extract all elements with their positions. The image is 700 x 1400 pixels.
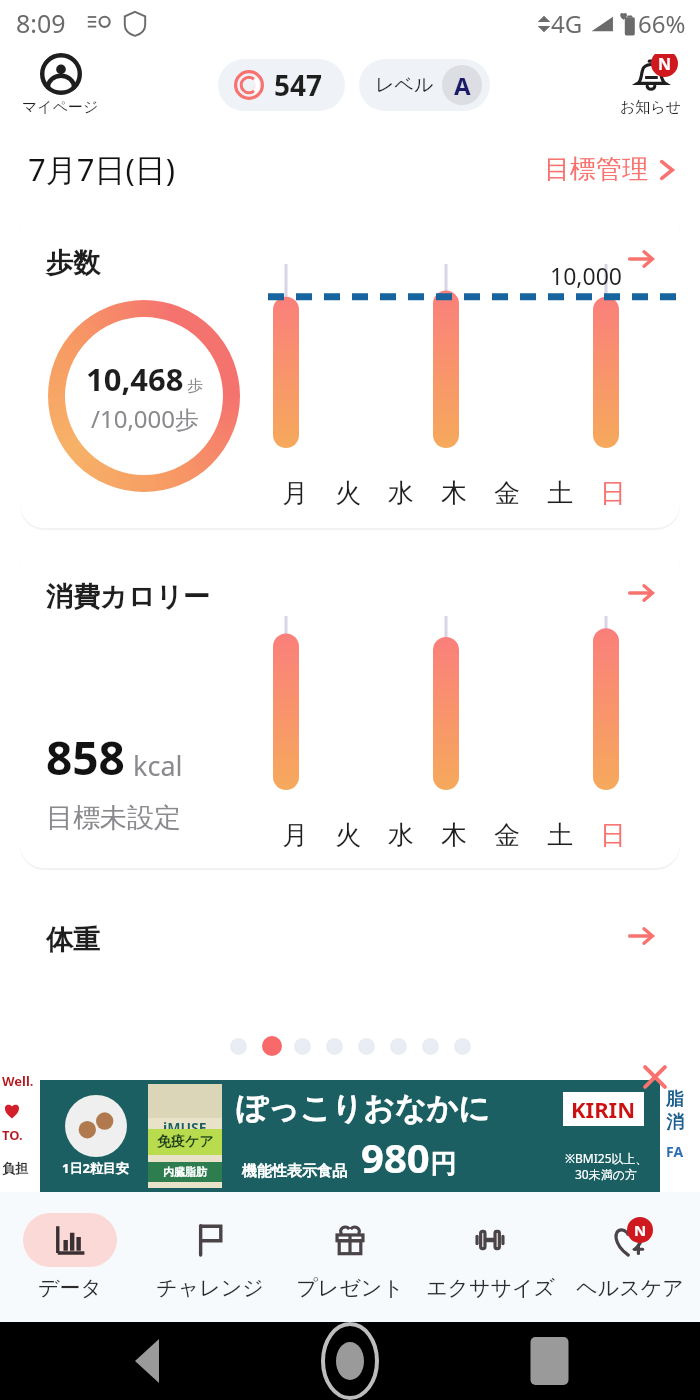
staticText: 土 <box>547 819 573 852</box>
button[interactable]: 消費カロリー <box>20 546 680 868</box>
button[interactable]: データ <box>0 1192 140 1322</box>
staticText: 目標未設定 <box>46 801 181 835</box>
staticText: 機能性表示食品 <box>242 1162 347 1181</box>
button[interactable]: チャレンジ <box>140 1192 280 1322</box>
staticText: 980 <box>361 1130 430 1184</box>
staticText: Well. <box>2 1072 34 1090</box>
button[interactable]: N <box>560 1192 700 1322</box>
staticText: 858 <box>46 726 125 789</box>
staticText: 脂 <box>666 1088 684 1111</box>
staticText: 66% <box>638 7 686 40</box>
staticText: 月 <box>282 477 308 510</box>
staticText: チャレンジ <box>156 1275 264 1301</box>
staticText: 10,468 <box>86 358 184 400</box>
staticText: FA <box>666 1142 684 1161</box>
staticText: KIRIN <box>571 1094 636 1124</box>
staticText: 内臓脂肪 <box>163 1165 207 1179</box>
button[interactable]: プレゼント <box>280 1192 420 1322</box>
staticText: 負担 <box>2 1160 28 1176</box>
staticText: 消 <box>666 1111 684 1134</box>
button[interactable]: エクササイズ <box>420 1192 560 1322</box>
staticText: 30未満の方 <box>575 1166 638 1182</box>
staticText: 円 <box>430 1148 456 1181</box>
staticText: ※BMI25以上、 <box>565 1150 648 1166</box>
staticText: エクササイズ <box>426 1275 555 1301</box>
button[interactable]: 広告を閉じる <box>638 1060 672 1094</box>
staticText: データ <box>38 1275 102 1301</box>
staticText: 金 <box>494 819 520 852</box>
button[interactable]: 消費カロリーの詳細 <box>622 574 660 612</box>
staticText: 免疫ケア <box>157 1133 214 1151</box>
staticText: 土 <box>547 477 573 510</box>
staticText: 木 <box>441 477 467 510</box>
staticText: 1日2粒目安 <box>62 1159 129 1177</box>
staticText: 木 <box>441 819 467 852</box>
button[interactable]: 1日2粒目安 <box>40 1080 660 1192</box>
staticText: 火 <box>335 477 361 510</box>
staticText: レベル <box>375 73 434 97</box>
staticText: 体重 <box>46 923 100 957</box>
staticText: 日 <box>600 477 626 510</box>
staticText: 消費カロリー <box>46 580 210 614</box>
staticText: TO. <box>2 1126 23 1144</box>
staticText: 火 <box>335 819 361 852</box>
staticText: 月 <box>282 819 308 852</box>
button[interactable]: レベル <box>359 59 490 111</box>
button[interactable]: 体重の詳細 <box>622 917 660 955</box>
staticText: 10,000 <box>550 260 622 291</box>
staticText: 歩数 <box>46 246 100 280</box>
staticText: kcal <box>133 747 183 784</box>
staticText: お知らせ <box>620 98 682 117</box>
staticText: マイページ <box>22 98 99 117</box>
staticText: 7月7日(日) <box>28 148 176 190</box>
staticText: ぽっこりおなかに <box>236 1089 490 1128</box>
staticText: 金 <box>494 477 520 510</box>
staticText: プレゼント <box>296 1275 404 1301</box>
staticText: /10,000歩 <box>91 402 199 435</box>
button[interactable]: 歩数 <box>20 210 680 528</box>
staticText: 水 <box>388 819 414 852</box>
button[interactable]: 歩数の詳細 <box>622 240 660 278</box>
staticText: ヘルスケア <box>576 1275 684 1301</box>
staticText: 4G <box>551 7 583 40</box>
button[interactable]: 体重 <box>20 887 680 1027</box>
staticText: 547 <box>274 66 323 104</box>
button[interactable]: お知らせ <box>616 54 686 117</box>
button[interactable]: マイページ <box>16 53 105 117</box>
staticText: 8:09 <box>16 6 66 40</box>
button[interactable]: 目標管理 <box>538 153 684 186</box>
staticText: 目標管理 <box>544 153 648 186</box>
staticText: 歩 <box>187 376 203 396</box>
staticText: N <box>634 1220 647 1240</box>
staticText: N <box>658 54 672 75</box>
staticText: A <box>454 69 471 102</box>
staticText: 水 <box>388 477 414 510</box>
staticText: iMUSE <box>163 1118 207 1137</box>
button[interactable]: 547 <box>218 59 345 111</box>
staticText: 日 <box>600 819 626 852</box>
